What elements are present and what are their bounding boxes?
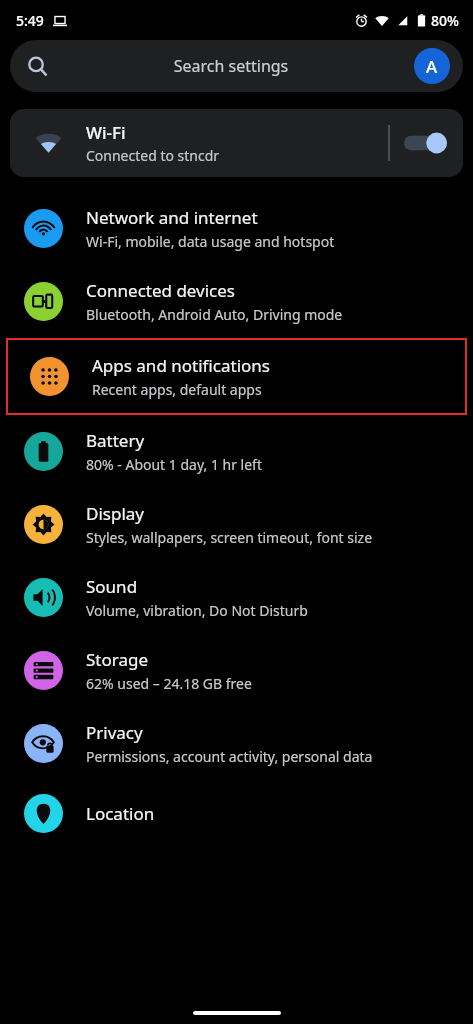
button[interactable]: Connected devices bbox=[0, 265, 473, 338]
button[interactable]: Wi-Fi toggle bbox=[390, 109, 463, 177]
staticText: Connected devices bbox=[86, 279, 236, 302]
staticText: Battery bbox=[86, 429, 145, 452]
button[interactable]: Location bbox=[0, 780, 473, 847]
staticText: 80% - About 1 day, 1 hr left bbox=[86, 455, 262, 474]
button[interactable]: Search settings bbox=[10, 40, 463, 92]
staticText: Network and internet bbox=[86, 206, 258, 229]
staticText: Wi-Fi bbox=[86, 121, 126, 144]
staticText: 5:49 bbox=[16, 11, 44, 30]
staticText: Bluetooth, Android Auto, Driving mode bbox=[86, 305, 343, 324]
staticText: Privacy bbox=[86, 721, 143, 744]
button[interactable]: Sound bbox=[0, 561, 473, 634]
button[interactable]: Apps and notifications bbox=[6, 338, 467, 415]
staticText: Permissions, account activity, personal … bbox=[86, 747, 373, 766]
staticText: A bbox=[426, 55, 438, 78]
staticText: Styles, wallpapers, screen timeout, font… bbox=[86, 528, 373, 547]
staticText: Display bbox=[86, 502, 144, 525]
staticText: Storage bbox=[86, 648, 149, 671]
button[interactable]: Account bbox=[414, 48, 450, 84]
staticText: Recent apps, default apps bbox=[92, 380, 262, 399]
staticText: Wi-Fi, mobile, data usage and hotspot bbox=[86, 232, 335, 251]
staticText: Connected to stncdr bbox=[86, 146, 220, 165]
staticText: Sound bbox=[86, 575, 138, 598]
staticText: Location bbox=[86, 802, 155, 825]
button[interactable]: Privacy bbox=[0, 707, 473, 780]
button[interactable]: Display bbox=[0, 488, 473, 561]
staticText: 62% used – 24.18 GB free bbox=[86, 674, 252, 693]
staticText: Volume, vibration, Do Not Disturb bbox=[86, 601, 308, 620]
staticText: Search settings bbox=[48, 55, 414, 77]
button[interactable]: Network and internet bbox=[0, 192, 473, 265]
button[interactable]: Storage bbox=[0, 634, 473, 707]
staticText: Apps and notifications bbox=[92, 354, 270, 377]
staticText: 80% bbox=[431, 11, 459, 30]
button[interactable]: Wi-Fi bbox=[10, 109, 463, 177]
button[interactable]: Battery bbox=[0, 415, 473, 488]
